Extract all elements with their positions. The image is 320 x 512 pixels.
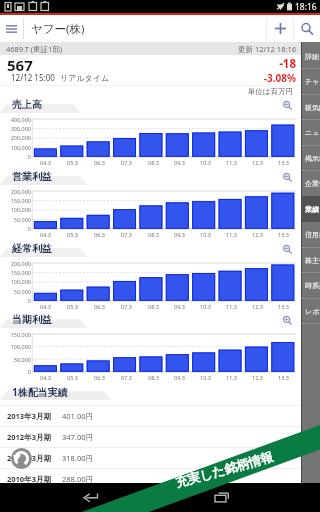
staticText: 更新 12/12 18:16 bbox=[238, 44, 297, 54]
staticText: 2012年3月期 bbox=[7, 432, 69, 442]
staticText: 0 bbox=[0, 368, 31, 375]
staticText: 単位は百万円 bbox=[0, 87, 293, 96]
staticText: 13.3 bbox=[278, 231, 289, 238]
button[interactable]: 2013年3月期 bbox=[0, 406, 301, 426]
staticText: -3.08% bbox=[0, 71, 296, 85]
button[interactable]: レポート bbox=[301, 298, 320, 324]
button[interactable]: Recent apps bbox=[202, 483, 242, 512]
staticText: 401.00円 bbox=[62, 411, 93, 421]
staticText: 0 bbox=[0, 225, 31, 232]
staticText: 06.3 bbox=[94, 303, 105, 310]
button[interactable]: チャート bbox=[301, 68, 320, 94]
button[interactable]: 詳細 bbox=[301, 43, 320, 69]
staticText: 150,000 bbox=[0, 197, 31, 204]
staticText: 05.3 bbox=[67, 374, 78, 381]
staticText: チャート bbox=[305, 77, 320, 86]
staticText: 株主優待 bbox=[305, 256, 320, 265]
staticText: 10.3 bbox=[200, 159, 211, 166]
button[interactable]: Add to portfolio bbox=[267, 15, 293, 42]
staticText: 13.3 bbox=[278, 303, 289, 310]
staticText: 08.3 bbox=[148, 374, 159, 381]
staticText: 05.3 bbox=[67, 231, 78, 238]
staticText: 09.3 bbox=[174, 303, 185, 310]
staticText: 1株配当実績 bbox=[12, 385, 68, 399]
staticText: 100,000 bbox=[0, 206, 31, 213]
staticText: 13.3 bbox=[278, 159, 289, 166]
button[interactable]: Menu bbox=[0, 15, 23, 42]
staticText: 11.3 bbox=[226, 231, 237, 238]
staticText: 200,000 bbox=[0, 260, 31, 267]
staticText: 318.00円 bbox=[62, 453, 93, 463]
button[interactable]: Home bbox=[140, 483, 180, 512]
button[interactable]: 2010年3月期 bbox=[0, 469, 301, 489]
button[interactable]: 2012年3月期 bbox=[0, 427, 301, 447]
staticText: 567 bbox=[7, 55, 33, 75]
button[interactable]: Enlarge chart bbox=[280, 313, 294, 327]
button[interactable]: 板気配 bbox=[301, 94, 320, 120]
staticText: 2011年3月期 bbox=[7, 453, 69, 463]
staticText: 100,000 bbox=[0, 343, 31, 350]
staticText: 18:16 bbox=[295, 1, 317, 13]
button[interactable]: 掲示板 bbox=[301, 145, 320, 171]
staticText: 300,000 bbox=[0, 125, 31, 132]
staticText: 04.3 bbox=[40, 374, 51, 381]
staticText: 12.3 bbox=[252, 303, 263, 310]
staticText: 07.3 bbox=[121, 374, 132, 381]
staticText: 09.3 bbox=[174, 159, 185, 166]
button[interactable]: ニュース bbox=[301, 119, 320, 145]
staticText: 13.3 bbox=[278, 374, 289, 381]
button[interactable]: Search bbox=[294, 15, 320, 42]
button[interactable]: 業績 bbox=[301, 196, 320, 222]
staticText: 50,000 bbox=[0, 216, 31, 223]
staticText: 12.3 bbox=[252, 231, 263, 238]
button[interactable]: Enlarge chart bbox=[280, 170, 294, 184]
staticText: 06.3 bbox=[94, 159, 105, 166]
staticText: 200,000 bbox=[0, 134, 31, 141]
button[interactable]: 企業情報 bbox=[301, 170, 320, 196]
staticText: 企業情報 bbox=[305, 179, 320, 188]
button[interactable]: 時系列 bbox=[301, 272, 320, 298]
staticText: 150,000 bbox=[0, 331, 31, 338]
staticText: 0 bbox=[0, 297, 31, 304]
staticText: 10.3 bbox=[200, 231, 211, 238]
staticText: 04.3 bbox=[40, 159, 51, 166]
button[interactable]: Enlarge chart bbox=[280, 242, 294, 256]
staticText: 10.3 bbox=[200, 303, 211, 310]
staticText: 347.00円 bbox=[62, 432, 93, 442]
staticText: 板気配 bbox=[305, 103, 320, 112]
staticText: 10.3 bbox=[200, 374, 211, 381]
staticText: 11.3 bbox=[226, 303, 237, 310]
button[interactable]: 2011年3月期 bbox=[0, 448, 301, 468]
staticText: 288.00円 bbox=[62, 474, 93, 484]
staticText: 08.3 bbox=[148, 231, 159, 238]
staticText: 業績 bbox=[305, 205, 319, 214]
staticText: 4689.T (東証1部) bbox=[6, 44, 63, 54]
button[interactable]: 株主優待 bbox=[301, 247, 320, 273]
staticText: 経常利益 bbox=[12, 242, 52, 255]
button[interactable]: Enlarge chart bbox=[280, 98, 294, 112]
staticText: 充実した銘柄情報 bbox=[174, 449, 275, 491]
staticText: 信用残 bbox=[305, 230, 320, 239]
staticText: 0 bbox=[0, 153, 31, 160]
staticText: 07.3 bbox=[121, 231, 132, 238]
staticText: 05.3 bbox=[67, 303, 78, 310]
button[interactable]: Refresh bbox=[11, 448, 32, 469]
staticText: 50,000 bbox=[0, 288, 31, 295]
button[interactable]: Back bbox=[70, 483, 110, 512]
staticText: 11.3 bbox=[226, 374, 237, 381]
staticText: 08.3 bbox=[148, 159, 159, 166]
staticText: 100,000 bbox=[0, 144, 31, 151]
staticText: レポート bbox=[305, 307, 320, 316]
staticText: 05.3 bbox=[67, 159, 78, 166]
staticText: 150,000 bbox=[0, 269, 31, 276]
staticText: 04.3 bbox=[40, 231, 51, 238]
staticText: 06.3 bbox=[94, 374, 105, 381]
staticText: リアルタイム bbox=[60, 73, 110, 83]
staticText: 07.3 bbox=[121, 159, 132, 166]
staticText: 2013年3月期 bbox=[7, 411, 69, 421]
button[interactable]: 信用残 bbox=[301, 221, 320, 247]
staticText: 07.3 bbox=[121, 303, 132, 310]
staticText: 100,000 bbox=[0, 278, 31, 285]
staticText: 08.3 bbox=[148, 303, 159, 310]
staticText: -18 bbox=[0, 56, 296, 72]
